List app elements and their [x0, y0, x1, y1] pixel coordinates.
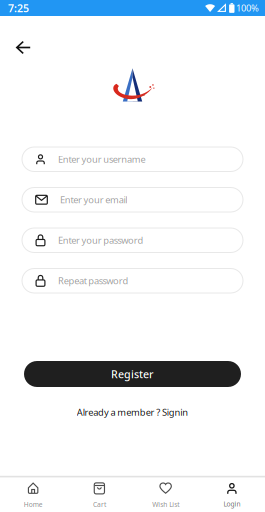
- button[interactable]: Enter your password: [22, 228, 243, 252]
- staticText: Already a member ? Signin: [77, 406, 188, 418]
- staticText: Enter your email: [60, 194, 127, 206]
- staticText: Enter your username: [58, 153, 145, 165]
- button[interactable]: Register: [24, 361, 241, 387]
- staticText: Register: [111, 367, 154, 381]
- button[interactable]: Login: [199, 482, 265, 508]
- button[interactable]: Home: [0, 482, 66, 509]
- button[interactable]: Enter your email: [22, 187, 243, 212]
- button[interactable]: Wish List: [132, 482, 199, 509]
- button[interactable]: Already a member ? Signin: [77, 406, 188, 418]
- staticText: Wish List: [152, 500, 179, 509]
- staticText: Repeat password: [58, 275, 128, 287]
- staticText: Enter your password: [58, 234, 143, 246]
- staticText: Login: [223, 499, 240, 508]
- button[interactable]: Back: [16, 41, 31, 54]
- button[interactable]: Enter your username: [22, 147, 243, 171]
- staticText: 7:25: [8, 1, 29, 15]
- button[interactable]: Cart: [66, 482, 132, 509]
- button[interactable]: Repeat password: [22, 268, 243, 293]
- staticText: 100%: [236, 2, 259, 14]
- staticText: Home: [24, 500, 43, 509]
- staticText: Cart: [93, 500, 106, 509]
